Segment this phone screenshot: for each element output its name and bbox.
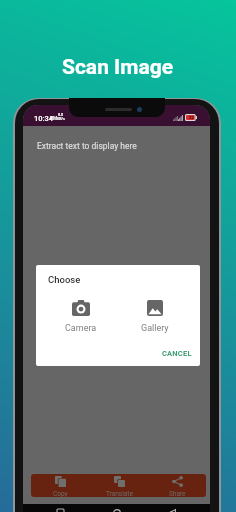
staticText: 10:34 [34,114,54,123]
staticText: Scan Image [62,55,174,80]
button[interactable]: Home [113,509,121,512]
staticText: CANCEL [162,349,192,358]
staticText: Extract text to display here [37,141,137,151]
button[interactable]: Recents [57,509,64,512]
button[interactable]: Copy [31,474,90,497]
staticText: Copy [53,490,68,497]
staticText: Choose [48,274,81,285]
staticText: PM [50,116,58,122]
button[interactable]: Back [169,509,176,512]
button[interactable]: Gallery [118,300,192,334]
staticText: 32 [189,115,194,120]
staticText: Share [169,490,186,497]
button[interactable]: Share [148,474,206,497]
staticText: KB/s [57,117,65,121]
staticText: Translate [106,490,133,497]
button[interactable]: Camera [44,300,118,334]
button[interactable]: CANCEL [154,342,200,365]
button[interactable]: Translate [90,474,148,497]
staticText: 0.0 [58,113,64,117]
staticText: Gallery [141,323,169,334]
staticText: Camera [65,323,97,334]
